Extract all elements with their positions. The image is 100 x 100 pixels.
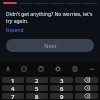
staticText: Next	[44, 42, 57, 49]
button[interactable]: Stickers	[16, 62, 32, 76]
staticText: 2	[35, 77, 39, 83]
button[interactable]: Next	[6, 39, 94, 52]
staticText: 7	[11, 93, 15, 99]
button[interactable]: Key	[75, 85, 98, 91]
button[interactable]: 9	[50, 93, 73, 99]
staticText: 3	[60, 77, 64, 83]
staticText: 8	[35, 93, 39, 99]
staticText: 4	[11, 85, 15, 91]
button[interactable]: 7	[2, 93, 24, 99]
button[interactable]: 1	[2, 77, 24, 83]
button[interactable]: 8	[26, 93, 48, 99]
staticText: 9	[60, 93, 64, 99]
staticText: 6	[60, 85, 64, 91]
button[interactable]: 2	[26, 77, 48, 83]
button[interactable]: Backspace	[75, 77, 98, 83]
button[interactable]: 4	[2, 85, 24, 91]
button[interactable]: Settings	[49, 62, 66, 76]
button[interactable]: 3	[50, 77, 73, 83]
staticText: Didn't get anything? No worries, let's t…	[6, 11, 94, 25]
button[interactable]: Collapse	[83, 62, 100, 76]
button[interactable]: Theme	[66, 62, 83, 76]
button[interactable]: Key	[75, 93, 98, 99]
button[interactable]: Resend	[6, 27, 24, 34]
button[interactable]: Voice input	[0, 62, 16, 76]
staticText: 1	[11, 77, 15, 83]
staticText: Resend	[6, 27, 24, 34]
button[interactable]: Clipboard	[32, 62, 49, 76]
staticText: 5	[35, 85, 39, 91]
button[interactable]: 5	[26, 85, 48, 91]
button[interactable]: 6	[50, 85, 73, 91]
